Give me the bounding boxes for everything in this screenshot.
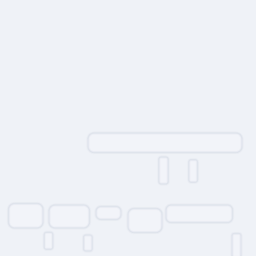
button[interactable]: Option two — [189, 160, 197, 182]
button[interactable]: Third action — [96, 206, 121, 219]
button[interactable]: Search field — [88, 133, 242, 152]
button[interactable]: Fifth action — [166, 205, 232, 222]
button[interactable]: Second action — [49, 205, 89, 228]
button[interactable]: Fourth action — [128, 208, 162, 232]
button[interactable]: Option one — [159, 157, 168, 184]
button[interactable]: First action — [8, 203, 43, 228]
